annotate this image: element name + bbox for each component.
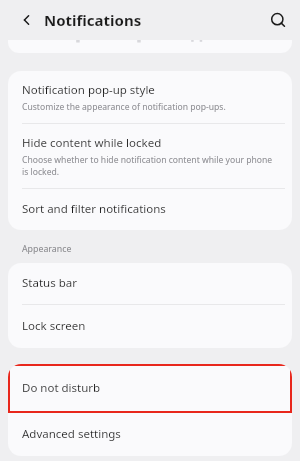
- button[interactable]: Hide content while locked: [8, 124, 292, 188]
- staticText: Advanced settings: [22, 426, 121, 442]
- button[interactable]: Do not disturb: [8, 364, 292, 413]
- staticText: Appearance: [22, 243, 72, 255]
- staticText: Customize the appearance of notification…: [22, 101, 226, 113]
- staticText: Notifications: [44, 10, 142, 30]
- staticText: Status bar: [22, 275, 77, 291]
- staticText: Notification pop-up style: [22, 82, 155, 98]
- staticText: Hide content while locked: [22, 135, 162, 151]
- button[interactable]: Back: [12, 5, 42, 35]
- button[interactable]: Lock screen: [8, 305, 292, 348]
- button[interactable]: Status bar: [8, 263, 292, 304]
- staticText: Choose whether to hide notification cont…: [22, 154, 278, 178]
- staticText: Do not disturb: [22, 380, 101, 396]
- staticText: Lock screen: [22, 318, 86, 334]
- button[interactable]: Sort and filter notifications: [8, 189, 292, 230]
- staticText: Sort and filter notifications: [22, 201, 166, 217]
- button[interactable]: Search: [262, 4, 294, 36]
- button[interactable]: Advanced settings: [8, 413, 292, 456]
- button[interactable]: Notification pop-up style: [8, 71, 292, 123]
